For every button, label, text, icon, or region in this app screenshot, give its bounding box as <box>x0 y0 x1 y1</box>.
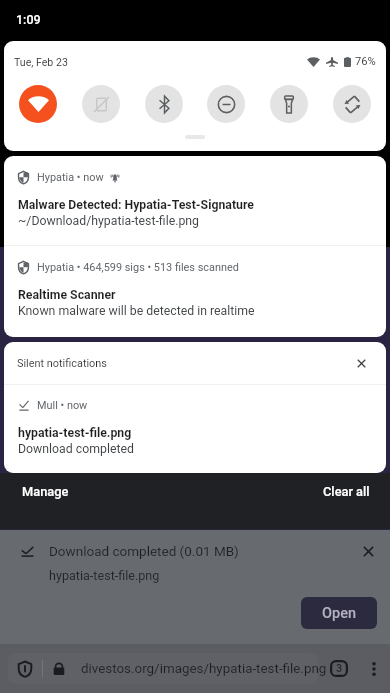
staticText: 1:09 <box>16 12 41 27</box>
staticText: 3 <box>336 662 343 675</box>
button[interactable]: Manage <box>9 476 82 507</box>
staticText: Tue, Feb 23 <box>14 56 68 68</box>
button[interactable]: Dismiss <box>350 352 372 374</box>
button[interactable]: Open <box>301 597 377 629</box>
button[interactable]: Tabs <box>326 644 352 693</box>
staticText: Malware Detected: Hypatia-Test-Signature <box>18 198 255 212</box>
staticText: Open <box>322 605 357 622</box>
button[interactable]: Tracking protection <box>14 658 36 680</box>
button[interactable]: Close <box>357 540 379 562</box>
button[interactable]: Silent notifications <box>4 342 386 384</box>
button[interactable]: Auto rotate <box>82 85 120 123</box>
button[interactable]: More options <box>362 644 386 693</box>
button[interactable]: Bluetooth <box>145 85 183 123</box>
button[interactable]: Wi-Fi <box>19 85 57 123</box>
staticText: Clear all <box>323 484 370 499</box>
button[interactable]: Clear all <box>310 476 383 507</box>
staticText: Realtime Scanner <box>18 288 116 302</box>
staticText: Known malware will be detected in realti… <box>18 304 255 318</box>
button[interactable]: Mull • now <box>4 385 386 473</box>
button[interactable] <box>8 653 318 684</box>
button[interactable]: Do not disturb <box>207 85 245 123</box>
staticText: hypatia-test-file.png <box>49 568 160 583</box>
staticText: hypatia-test-file.png <box>18 426 132 440</box>
staticText: Hypatia • 464,599 sigs • 513 files scann… <box>37 261 239 274</box>
button[interactable]: Hypatia • 464,599 sigs • 513 files scann… <box>4 246 386 337</box>
staticText: 76% <box>355 55 376 68</box>
staticText: Download completed (0.01 MB) <box>49 543 239 559</box>
button[interactable]: Data saver <box>333 85 371 123</box>
staticText: ~/Download/hypatia-test-file.png <box>18 214 200 228</box>
staticText: divestos.org/images/hypatia-test-file.pn… <box>81 661 390 677</box>
staticText: Manage <box>22 484 69 499</box>
staticText: Hypatia • now <box>37 171 104 184</box>
staticText: Download completed <box>18 442 134 456</box>
button[interactable]: Hypatia • now <box>4 156 386 245</box>
staticText: Silent notifications <box>17 357 107 370</box>
staticText: Mull • now <box>37 399 88 412</box>
button[interactable]: Flashlight <box>270 85 308 123</box>
